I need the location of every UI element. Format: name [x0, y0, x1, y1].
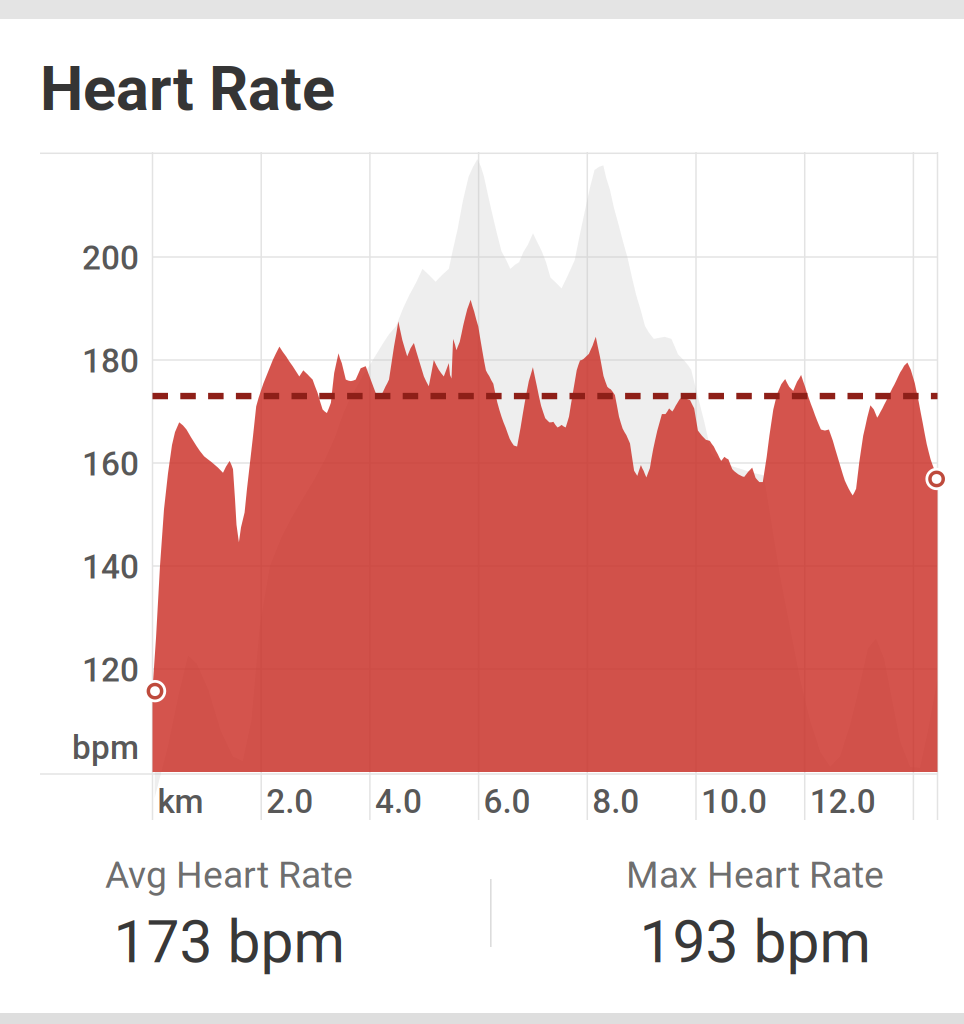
- staticText: 140: [82, 547, 139, 587]
- staticText: 4.0: [375, 782, 422, 821]
- staticText: 173 bpm: [113, 908, 344, 976]
- staticText: 6.0: [484, 782, 531, 821]
- staticText: 180: [82, 341, 139, 381]
- button[interactable]: Avg Heart Rate: [19, 853, 439, 976]
- staticText: km: [157, 782, 203, 821]
- staticText: 200: [82, 238, 139, 278]
- staticText: 10.0: [701, 782, 767, 821]
- staticText: 120: [82, 650, 139, 690]
- staticText: 8.0: [592, 782, 639, 821]
- staticText: 160: [82, 444, 139, 484]
- staticText: Heart Rate: [40, 53, 335, 125]
- staticText: bpm: [72, 728, 139, 767]
- staticText: 2.0: [266, 782, 313, 821]
- staticText: Avg Heart Rate: [105, 853, 353, 897]
- staticText: Max Heart Rate: [626, 853, 884, 897]
- button[interactable]: Max Heart Rate: [545, 853, 964, 976]
- staticText: 193 bpm: [639, 908, 870, 976]
- staticText: 12.0: [810, 782, 876, 821]
